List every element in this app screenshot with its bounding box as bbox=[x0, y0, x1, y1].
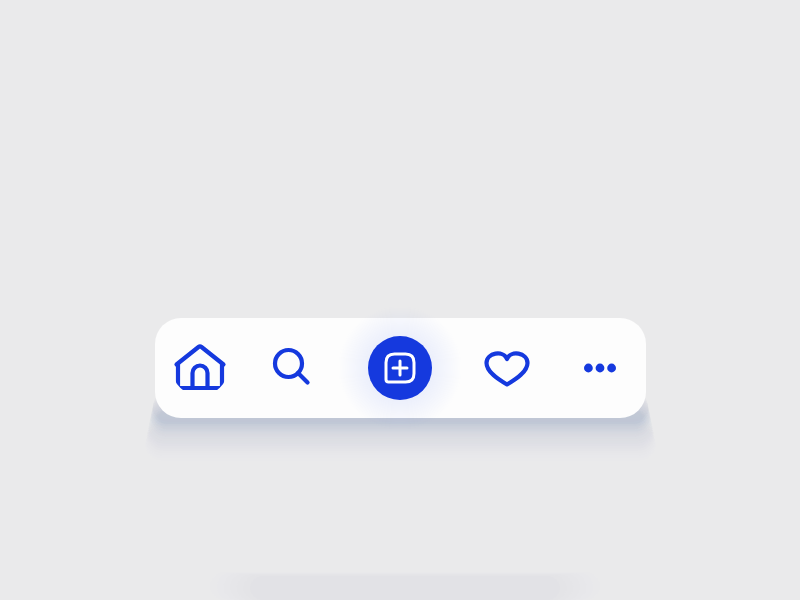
button[interactable]: Home bbox=[172, 340, 228, 396]
button[interactable]: More options bbox=[572, 340, 628, 396]
button[interactable]: Create new post bbox=[368, 336, 432, 400]
button[interactable]: Favourites bbox=[479, 340, 535, 396]
button[interactable]: Search bbox=[264, 340, 320, 396]
